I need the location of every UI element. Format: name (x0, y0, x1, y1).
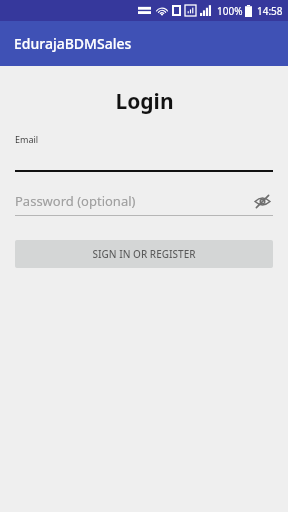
staticText: Login (115, 87, 174, 116)
staticText: 14:58 (257, 4, 283, 18)
button[interactable]: Password (optional) (15, 190, 273, 216)
button[interactable]: Email (15, 133, 273, 172)
staticText: 100% (217, 4, 243, 18)
staticText: EdurajaBDMSales (14, 34, 132, 53)
button[interactable]: Show password (251, 190, 273, 212)
button[interactable]: SIGN IN OR REGISTER (15, 240, 273, 268)
staticText: SIGN IN OR REGISTER (92, 247, 196, 261)
staticText: Password (optional) (15, 192, 251, 210)
staticText: Email (15, 133, 39, 145)
